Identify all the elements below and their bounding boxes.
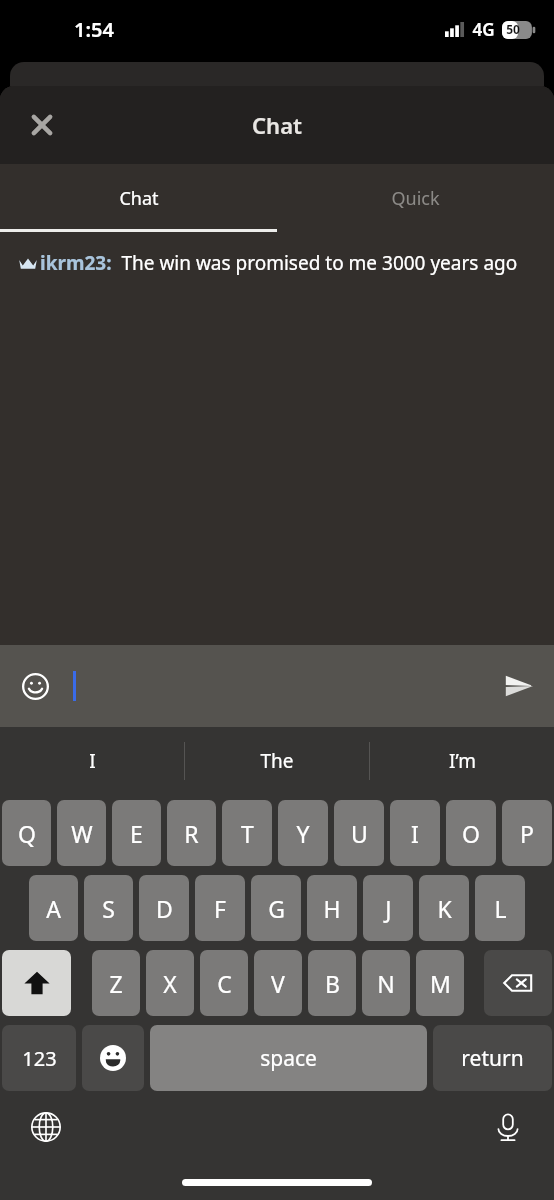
staticText: A [46,893,61,924]
button[interactable]: F [195,875,245,941]
button[interactable]: Emoji [8,659,62,713]
button[interactable]: I’m [370,727,554,795]
button[interactable]: Shift [2,950,71,1016]
button[interactable]: 123 [2,1025,76,1091]
button[interactable]: E [112,800,161,866]
button[interactable]: Send [492,659,546,713]
staticText: Quick [391,186,440,211]
button[interactable]: Backspace [484,950,552,1016]
button[interactable]: D [139,875,189,941]
button[interactable]: C [200,950,248,1016]
button[interactable]: Q [2,800,51,866]
button[interactable]: return [433,1025,552,1091]
staticText: S [102,893,115,924]
staticText: D [156,893,173,924]
staticText: Q [18,818,36,849]
button[interactable]: Quick [277,164,554,232]
staticText: H [323,893,341,924]
button[interactable]: G [251,875,301,941]
button[interactable]: O [446,800,496,866]
button[interactable]: R [167,800,216,866]
button[interactable]: M [416,950,464,1016]
button[interactable]: Change keyboard language [18,1099,74,1155]
staticText: E [130,818,143,849]
button[interactable]: U [334,800,384,866]
button[interactable]: Z [92,950,140,1016]
staticText: ikrm23: The win was promised to me 3000 … [40,250,518,276]
button[interactable]: X [146,950,194,1016]
staticText: K [437,893,452,924]
button[interactable]: Y [278,800,328,866]
staticText: F [214,893,226,924]
staticText: I [89,748,96,774]
button[interactable]: The [185,727,369,795]
button[interactable]: J [363,875,413,941]
button[interactable]: H [307,875,357,941]
button[interactable]: W [57,800,106,866]
button[interactable]: V [254,950,302,1016]
button[interactable]: space [150,1025,427,1091]
button[interactable]: K [419,875,469,941]
staticText: return [461,1044,524,1073]
staticText: 1:54 [74,16,114,43]
button[interactable]: A [29,875,78,941]
staticText: Chat [119,186,159,211]
staticText: Y [296,818,310,849]
staticText: L [494,893,507,924]
staticText: M [430,968,451,999]
staticText: Chat [252,110,302,140]
button[interactable]: B [308,950,356,1016]
staticText: O [462,818,480,849]
staticText: N [377,968,395,999]
button[interactable]: Dictation [480,1099,536,1155]
staticText: R [184,818,199,849]
button[interactable]: L [475,875,525,941]
staticText: 4G [472,18,495,41]
staticText: Z [109,968,123,999]
staticText: W [71,818,93,849]
staticText: P [520,818,534,849]
staticText: B [325,968,340,999]
staticText: U [351,818,368,849]
button[interactable]: Chat [0,164,277,232]
button[interactable]: P [502,800,552,866]
button[interactable]: Emoji keyboard [82,1025,144,1091]
staticText: The [260,748,294,774]
button[interactable]: I [0,727,184,795]
staticText: V [271,968,285,999]
staticText: X [163,968,177,999]
staticText: J [385,893,392,924]
staticText: I’m [449,748,476,774]
button[interactable]: I [390,800,440,866]
staticText: T [241,818,254,849]
staticText: C [217,968,232,999]
button[interactable]: T [222,800,272,866]
button[interactable]: S [84,875,133,941]
staticText: 50 [506,21,520,37]
staticText: G [268,893,285,924]
button[interactable]: Close [14,97,70,153]
staticText: space [260,1044,317,1073]
button[interactable]: N [362,950,410,1016]
staticText: I [411,818,419,849]
staticText: 123 [22,1045,57,1072]
